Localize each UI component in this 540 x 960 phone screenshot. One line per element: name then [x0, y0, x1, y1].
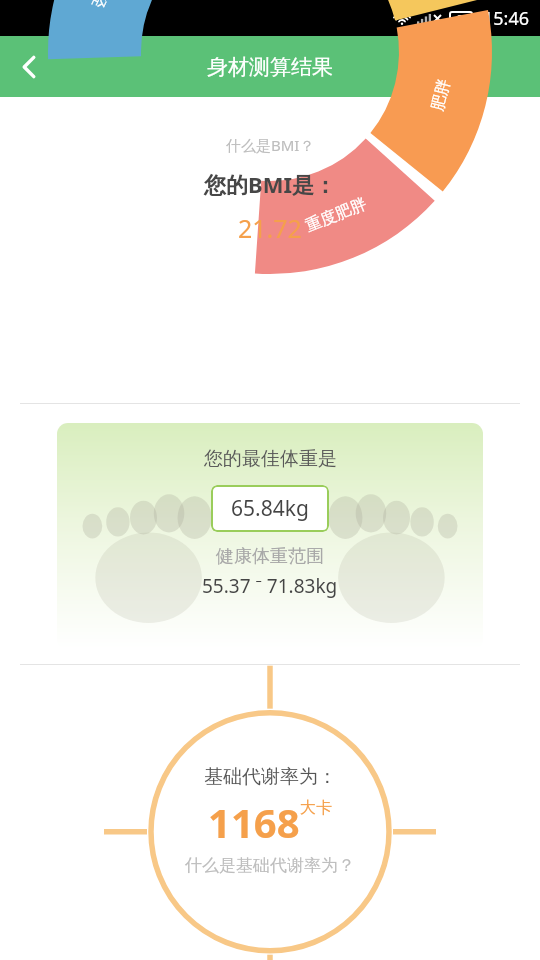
staticText: 21.72	[238, 211, 302, 245]
staticText: 什么是BMI？	[226, 135, 315, 155]
staticText: 您的BMI是：	[204, 169, 336, 199]
staticText: 身材测算结果	[207, 54, 333, 80]
staticText: 重度肥胖	[303, 194, 369, 236]
button[interactable]: 基础代谢率为：	[185, 765, 355, 876]
staticText: 55.37 ⁻ 71.83kg	[202, 573, 338, 599]
button[interactable]: 65.84kg	[211, 485, 329, 532]
staticText: 65.84kg	[231, 494, 309, 523]
staticText: 体重较轻	[87, 0, 133, 11]
staticText: 您的最佳体重是	[204, 447, 337, 471]
staticText: 86	[457, 12, 469, 26]
button[interactable]: Back	[0, 38, 58, 96]
staticText: 15:46	[483, 6, 530, 31]
button[interactable]: 重度肥胖	[286, 203, 386, 227]
staticText: 基础代谢率为：	[204, 765, 337, 789]
staticText: 健康体重范围	[216, 545, 324, 568]
button[interactable]: 您的最佳体重是	[57, 423, 483, 649]
staticText: 1168	[208, 795, 300, 849]
button[interactable]: 什么是BMI？	[224, 133, 317, 157]
button[interactable]: 肥胖	[391, 83, 491, 107]
staticText: 什么是基础代谢率为？	[185, 855, 355, 876]
staticText: 大卡	[300, 798, 332, 818]
staticText: 肥胖	[427, 77, 454, 113]
